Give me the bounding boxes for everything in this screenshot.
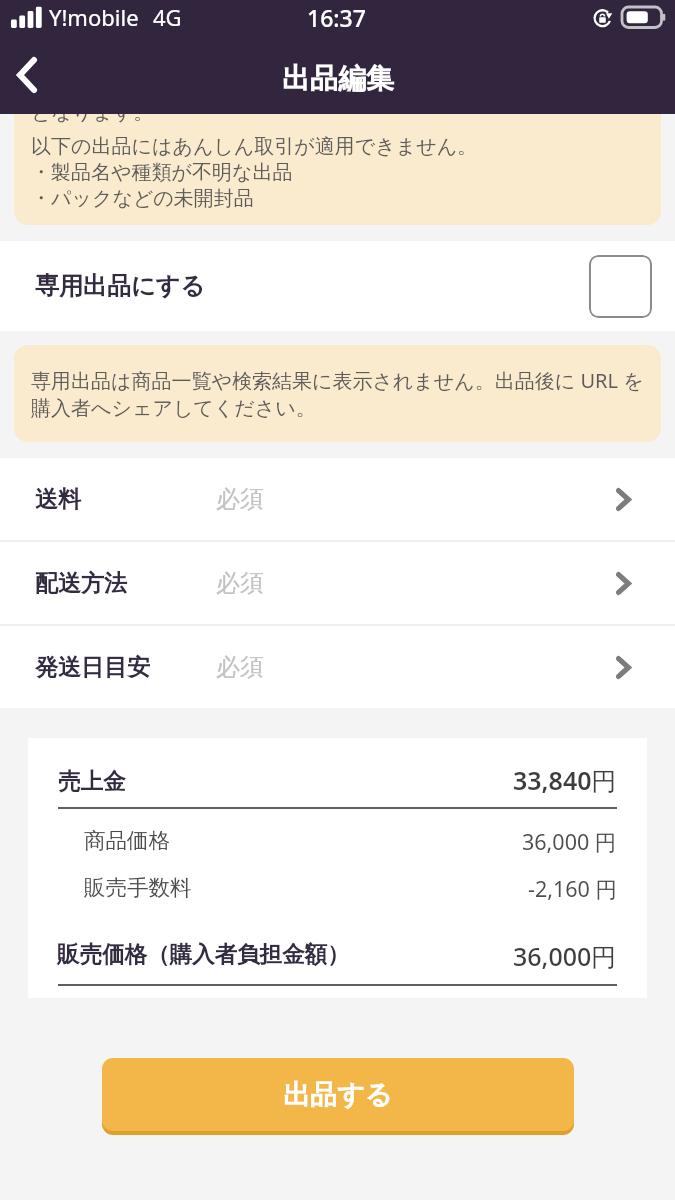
staticText: 必須 [216,568,264,598]
staticText: 必須 [216,484,264,514]
staticText: 4G [153,2,182,32]
staticText: ・パックなどの未開封品 [31,185,254,211]
staticText: 購入者へシェアしてください。 [31,395,316,421]
staticText: 専用出品にする [35,271,205,301]
staticText: 売上金 [58,767,126,795]
button[interactable]: 配送方法 [0,542,675,624]
button[interactable]: 出品する [102,1058,574,1131]
staticText: 発送日目安 [35,653,150,682]
button[interactable]: 専用出品にする [589,255,652,318]
staticText: 配送方法 [35,569,127,598]
staticText: 16:37 [307,2,366,33]
staticText: 送料 [35,485,81,514]
staticText: 33,840円 [513,763,617,797]
staticText: 以下の出品にはあんしん取引が適用できません。 [31,133,478,159]
staticText: -2,160 円 [528,874,617,903]
button[interactable]: 送料 [0,458,675,540]
staticText: 36,000円 [513,939,617,973]
staticText: 商品価格 [84,827,170,854]
staticText: 販売手数料 [84,874,192,901]
staticText: ・製品名や種類が不明な出品 [31,159,293,185]
staticText: 出品する [283,1078,393,1112]
button[interactable]: 専用出品にする [0,241,675,331]
staticText: 出品編集 [282,61,394,96]
staticText: となります。 [31,114,154,125]
staticText: 36,000 円 [522,827,617,856]
button[interactable]: Back [0,44,54,114]
staticText: Y!mobile [49,2,139,32]
staticText: 販売価格（購入者負担金額） [57,940,350,968]
button[interactable]: 発送日目安 [0,626,675,708]
staticText: 専用出品は商品一覧や検索結果に表示されません。出品後に URL を [31,367,644,395]
staticText: 必須 [216,652,264,682]
